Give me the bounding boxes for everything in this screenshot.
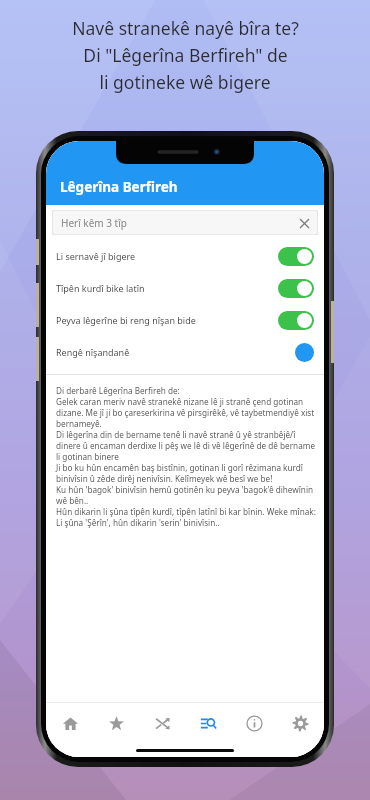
button[interactable]: Info: [232, 703, 276, 743]
button[interactable]: Settings: [278, 703, 322, 743]
staticText: Lêgerîna Berfireh: [60, 178, 178, 196]
button[interactable]: Clear search: [296, 215, 312, 231]
button[interactable]: Toggle on: [278, 311, 314, 330]
staticText: Peyva lêgerîne bi reng nîşan bide: [56, 314, 278, 326]
staticText: Tîpên kurdî bike latîn: [56, 282, 278, 294]
staticText: Navê stranekê nayê bîra te?: [72, 16, 299, 40]
button[interactable]: Favourites: [94, 703, 138, 743]
button[interactable]: Li sernavê jî bigere: [46, 240, 324, 272]
button[interactable]: Home: [48, 703, 92, 743]
button[interactable]: Advanced search: [186, 703, 230, 743]
staticText: Di derbarê Lêgerîna Berfireh de: Gelek c…: [56, 385, 316, 528]
staticText: Rengê nîşandanê: [56, 346, 295, 358]
staticText: li gotineke wê bigere: [99, 70, 271, 94]
button[interactable]: Toggle on: [278, 279, 314, 298]
button[interactable]: Herî kêm 3 tîp: [52, 210, 318, 235]
staticText: Herî kêm 3 tîp: [61, 216, 127, 230]
button[interactable]: Tîpên kurdî bike latîn: [46, 272, 324, 304]
button[interactable]: Pick highlight colour: [295, 343, 314, 362]
staticText: Di "Lêgerîna Berfireh" de: [83, 43, 288, 67]
button[interactable]: Toggle on: [278, 247, 314, 266]
button[interactable]: Rengê nîşandanê: [46, 336, 324, 368]
staticText: Li sernavê jî bigere: [56, 250, 278, 262]
button[interactable]: Shuffle: [140, 703, 184, 743]
button[interactable]: Peyva lêgerîne bi reng nîşan bide: [46, 304, 324, 336]
